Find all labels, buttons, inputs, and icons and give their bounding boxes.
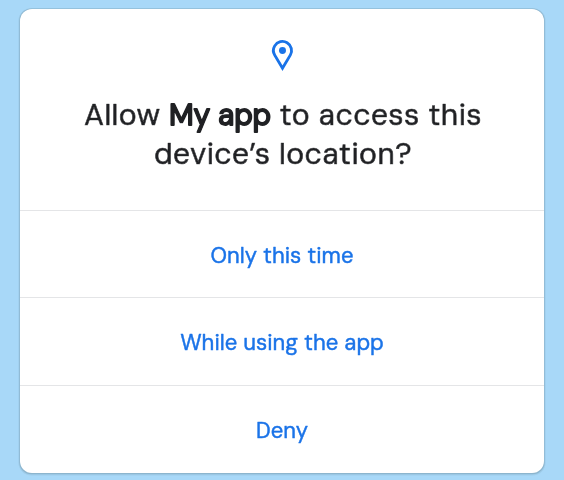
staticText: Allow My app to access this device’s loc… (43, 95, 523, 174)
staticText: Deny (256, 416, 308, 445)
button[interactable]: Deny (20, 386, 544, 472)
button[interactable]: Only this time (20, 211, 544, 297)
staticText: While using the app (180, 328, 384, 357)
staticText: While using the app (180, 328, 384, 357)
staticText: Allow My app to access this device’s loc… (43, 95, 523, 174)
staticText: Deny (256, 416, 308, 445)
staticText: Only this time (210, 241, 354, 270)
other: Location (272, 40, 293, 70)
staticText: Only this time (210, 241, 354, 270)
button[interactable]: While using the app (20, 298, 544, 385)
